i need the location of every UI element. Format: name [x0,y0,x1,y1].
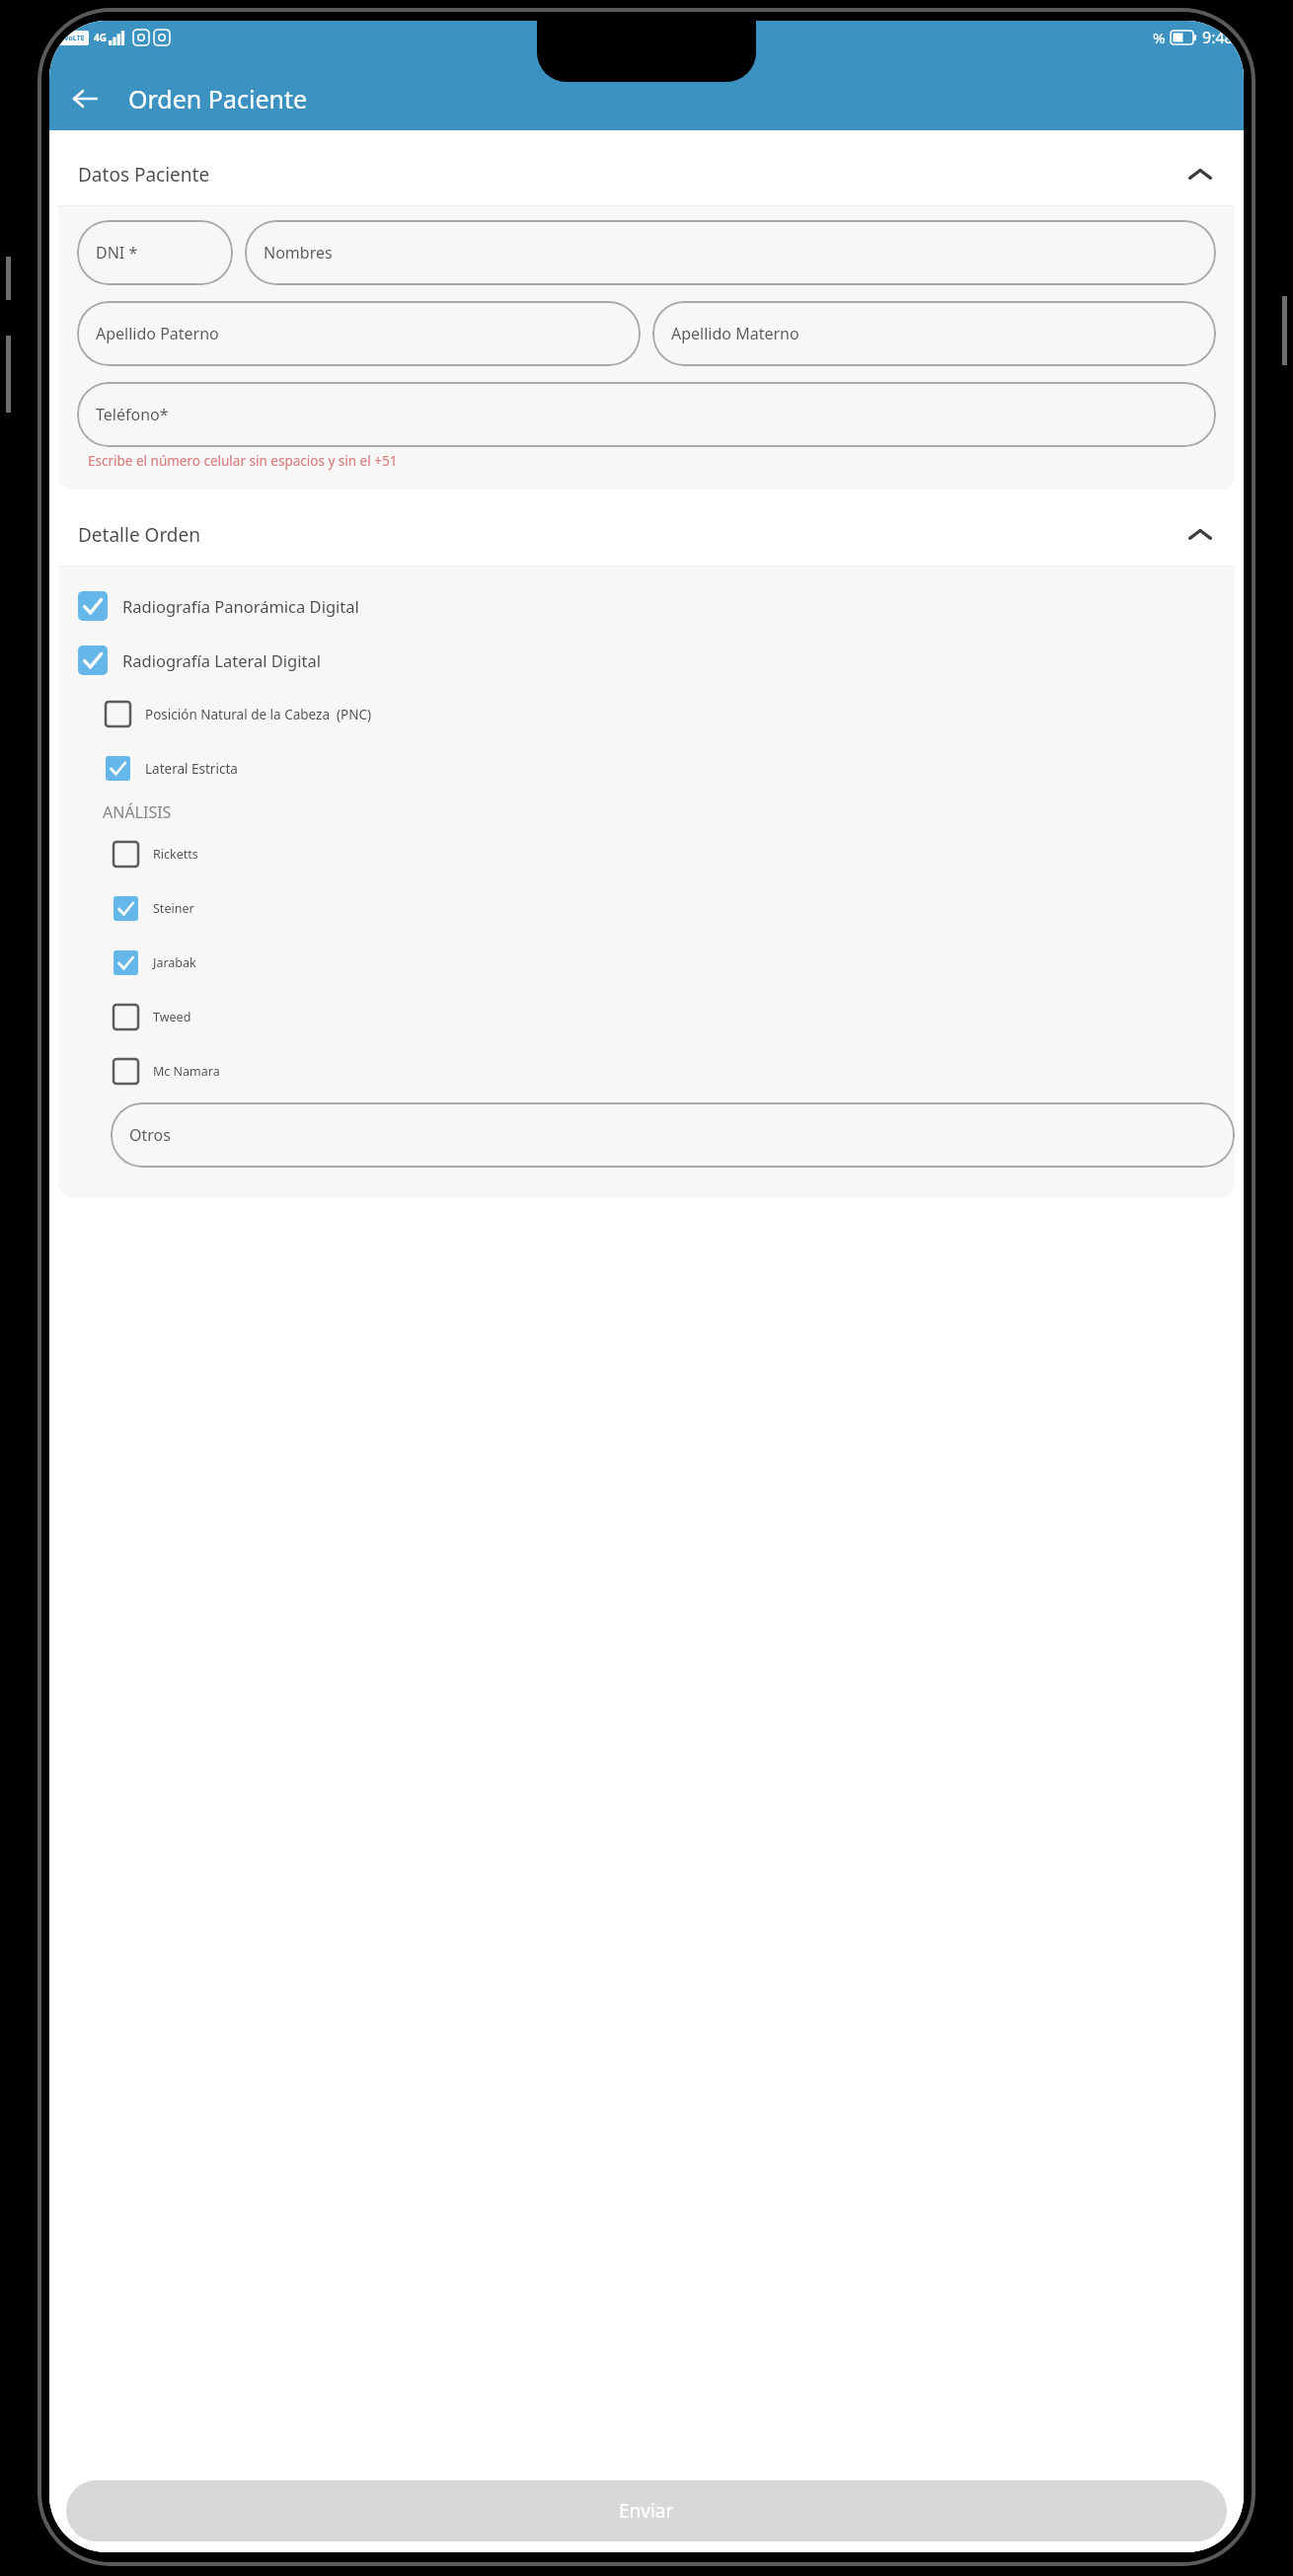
staticText: 4G [94,31,107,44]
staticText: ANÁLISIS [103,801,172,823]
staticText: DNI * [96,242,138,264]
staticText: Mc Namara [153,1063,220,1080]
button[interactable]: Datos Paciente [58,144,1235,205]
button[interactable]: Radiografía Panorámica Digital [58,578,1235,633]
staticText: % [1153,28,1166,47]
staticText: Jarabak [153,954,196,971]
staticText: Teléfono* [96,404,169,425]
button[interactable]: Posición Natural de la Cabeza (PNC) [58,687,1235,741]
button[interactable]: Ricketts [58,827,1235,881]
button[interactable]: Mc Namara [58,1044,1235,1099]
staticText: Apellido Paterno [96,323,219,344]
button[interactable]: Enviar [66,2480,1227,2541]
button[interactable]: Lateral Estricta [58,741,1235,796]
staticText: Escribe el número celular sin espacios y… [88,452,398,470]
button[interactable]: Tweed [58,990,1235,1044]
staticText: Enviar [619,2498,674,2524]
button[interactable]: Nombres [245,220,1216,285]
button[interactable]: Otros [111,1102,1235,1168]
staticText: Otros [129,1124,171,1146]
button[interactable]: Jarabak [58,936,1235,990]
button[interactable]: DNI * [77,220,233,285]
button[interactable]: Apellido Paterno [77,301,641,366]
button[interactable]: Steiner [58,881,1235,936]
staticText: 9:48 [1202,27,1234,48]
button[interactable]: Teléfono* [77,382,1216,447]
staticText: Radiografía Panorámica Digital [122,595,359,617]
button[interactable]: Apellido Materno [652,301,1216,366]
staticText: Tweed [153,1009,191,1025]
button[interactable]: Radiografía Lateral Digital [58,633,1235,687]
staticText: Apellido Materno [671,323,799,344]
button[interactable]: Detalle Orden [58,504,1235,566]
staticText: Steiner [153,900,194,917]
staticText: Orden Paciente [128,82,308,115]
staticText: Datos Paciente [78,162,210,188]
staticText: Posición Natural de la Cabeza (PNC) [145,706,372,723]
staticText: Lateral Estricta [145,760,238,778]
button[interactable]: Back [63,77,107,120]
staticText: Detalle Orden [78,522,201,548]
staticText: VoLTE [64,34,85,43]
staticText: Ricketts [153,846,198,863]
staticText: Radiografía Lateral Digital [122,649,321,671]
staticText: Nombres [264,242,333,264]
